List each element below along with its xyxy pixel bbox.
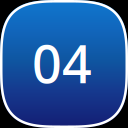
staticText: 04	[32, 28, 92, 98]
